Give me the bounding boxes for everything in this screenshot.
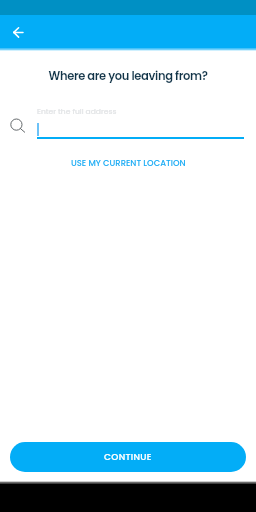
button[interactable]: CONTINUE [10, 442, 246, 472]
staticText: Enter the full address [37, 106, 117, 117]
staticText: Where are you leaving from? [0, 68, 256, 84]
button[interactable]: Enter the full address [6, 102, 246, 140]
button[interactable]: USE MY CURRENT LOCATION [0, 156, 256, 169]
staticText: CONTINUE [104, 451, 152, 464]
staticText: USE MY CURRENT LOCATION [71, 157, 186, 169]
button[interactable]: Back [6, 20, 30, 44]
